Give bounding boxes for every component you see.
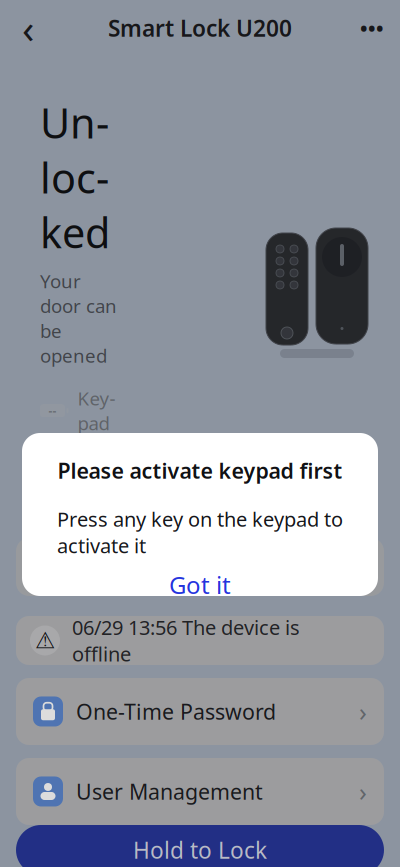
button[interactable]: Back [6,6,50,50]
button[interactable]: Got it [22,559,378,611]
staticText: Got it [169,569,231,601]
button[interactable]: User Management [16,758,384,825]
staticText: Smart Lock U200 [108,13,292,43]
staticText: Please activate keypad first [57,456,342,485]
staticText: ᛒ [64,545,81,589]
staticText: ‹ [22,1,34,54]
staticText: Keypad [77,386,115,435]
button[interactable]: Hold to Lock [16,825,384,867]
staticText: 06/29 13:56 The device is offline [72,614,300,667]
staticText: ☁ [184,550,215,584]
staticText: One-Time Password [76,697,276,726]
staticText: ••• [360,15,384,41]
staticText: Lock [77,440,113,490]
staticText: Hold to Lock [133,835,267,865]
staticText: 26 [45,457,59,473]
staticText: -- [48,403,56,419]
button[interactable]: Cloud unavailable [143,538,257,596]
staticText: › [359,775,367,808]
staticText: Unlocked [40,95,110,260]
button[interactable]: Bluetooth [16,538,129,596]
staticText: Press any key on the keypad to activate … [57,506,343,559]
staticText: › [359,695,367,728]
staticText: Your door can be opened [40,269,117,368]
staticText: ⚠ [35,628,55,653]
button[interactable]: More options [350,6,394,50]
button[interactable]: One-Time Password [16,678,384,745]
button[interactable]: More features [271,538,384,596]
staticText: User Management [76,777,263,806]
